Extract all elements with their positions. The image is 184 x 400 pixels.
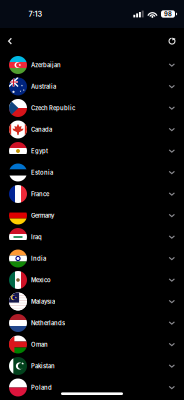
staticText: Iraq xyxy=(31,233,42,241)
staticText: India xyxy=(31,255,46,262)
button[interactable]: Pakistan xyxy=(0,355,184,377)
staticText: Azerbaijan xyxy=(31,61,61,69)
button[interactable]: Back xyxy=(0,28,20,54)
button[interactable]: France xyxy=(0,183,184,205)
staticText: France xyxy=(31,190,49,198)
staticText: Oman xyxy=(31,341,48,348)
button[interactable]: Egypt xyxy=(0,140,184,162)
staticText: Germany xyxy=(31,212,54,219)
button[interactable]: Refresh xyxy=(162,28,182,54)
staticText: Poland xyxy=(31,384,52,391)
button[interactable]: Poland xyxy=(0,377,184,398)
button[interactable]: Czech Republic xyxy=(0,97,184,119)
button[interactable]: Azerbaijan xyxy=(0,54,184,76)
staticText: 7:13 xyxy=(28,10,42,18)
staticText: 98 xyxy=(164,10,172,18)
button[interactable]: Mexico xyxy=(0,269,184,291)
staticText: Czech Republic xyxy=(31,104,75,112)
staticText: Netherlands xyxy=(31,319,65,327)
button[interactable]: India xyxy=(0,248,184,269)
staticText: Australia xyxy=(31,83,56,90)
button[interactable]: Netherlands xyxy=(0,312,184,334)
staticText: Pakistan xyxy=(31,362,55,370)
button[interactable]: Malaysia xyxy=(0,291,184,312)
button[interactable]: Australia xyxy=(0,76,184,97)
button[interactable]: Germany xyxy=(0,205,184,226)
staticText: Egypt xyxy=(31,147,48,155)
button[interactable]: Oman xyxy=(0,334,184,355)
button[interactable]: Estonia xyxy=(0,162,184,183)
button[interactable]: Iraq xyxy=(0,226,184,248)
staticText: Estonia xyxy=(31,169,53,176)
staticText: Mexico xyxy=(31,276,51,284)
staticText: Malaysia xyxy=(31,298,55,305)
staticText: Canada xyxy=(31,126,52,133)
button[interactable]: Canada xyxy=(0,119,184,140)
